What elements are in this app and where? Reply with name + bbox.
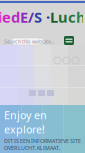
staticText: DIT IS EEN INFORMATIEVE SITE OVER LUCHT,… [4,137,81,153]
button[interactable]: Social link [72,57,79,64]
button[interactable]: Social link [54,57,61,64]
staticText: Search this website... [4,38,54,45]
staticText: i [0,7,2,27]
staticText: / [28,7,34,27]
staticText: u [58,7,68,27]
staticText: c [68,7,76,27]
staticText: e [2,7,11,27]
staticText: h [76,7,85,27]
staticText: Enjoy en explore! [4,108,47,136]
staticText: d [11,7,20,27]
staticText: L [50,7,58,27]
staticText: S [34,7,42,27]
staticText: · [46,7,50,27]
button[interactable]: Menu [64,36,74,45]
button[interactable]: Social link [63,57,70,64]
button[interactable]: Search this website... [11,38,44,45]
staticText: E [20,7,28,27]
